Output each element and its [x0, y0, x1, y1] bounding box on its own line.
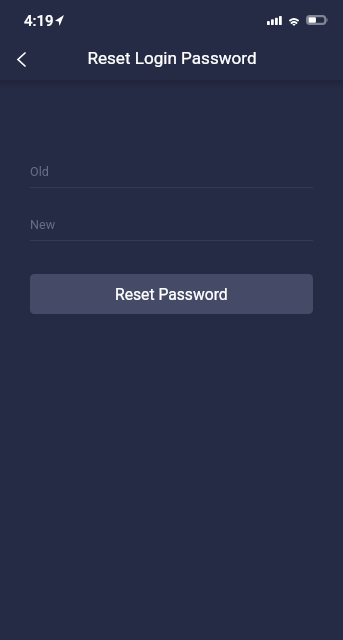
staticText: Reset Login Password — [87, 48, 257, 68]
button[interactable]: Back — [0, 38, 42, 80]
staticText: Old — [30, 164, 49, 179]
staticText: Reset Password — [115, 285, 228, 303]
button[interactable]: Old — [30, 156, 313, 188]
staticText: New — [30, 217, 56, 232]
staticText: 4:19 — [24, 12, 54, 30]
button[interactable]: Reset Password — [30, 274, 313, 314]
button[interactable]: New — [30, 209, 313, 241]
